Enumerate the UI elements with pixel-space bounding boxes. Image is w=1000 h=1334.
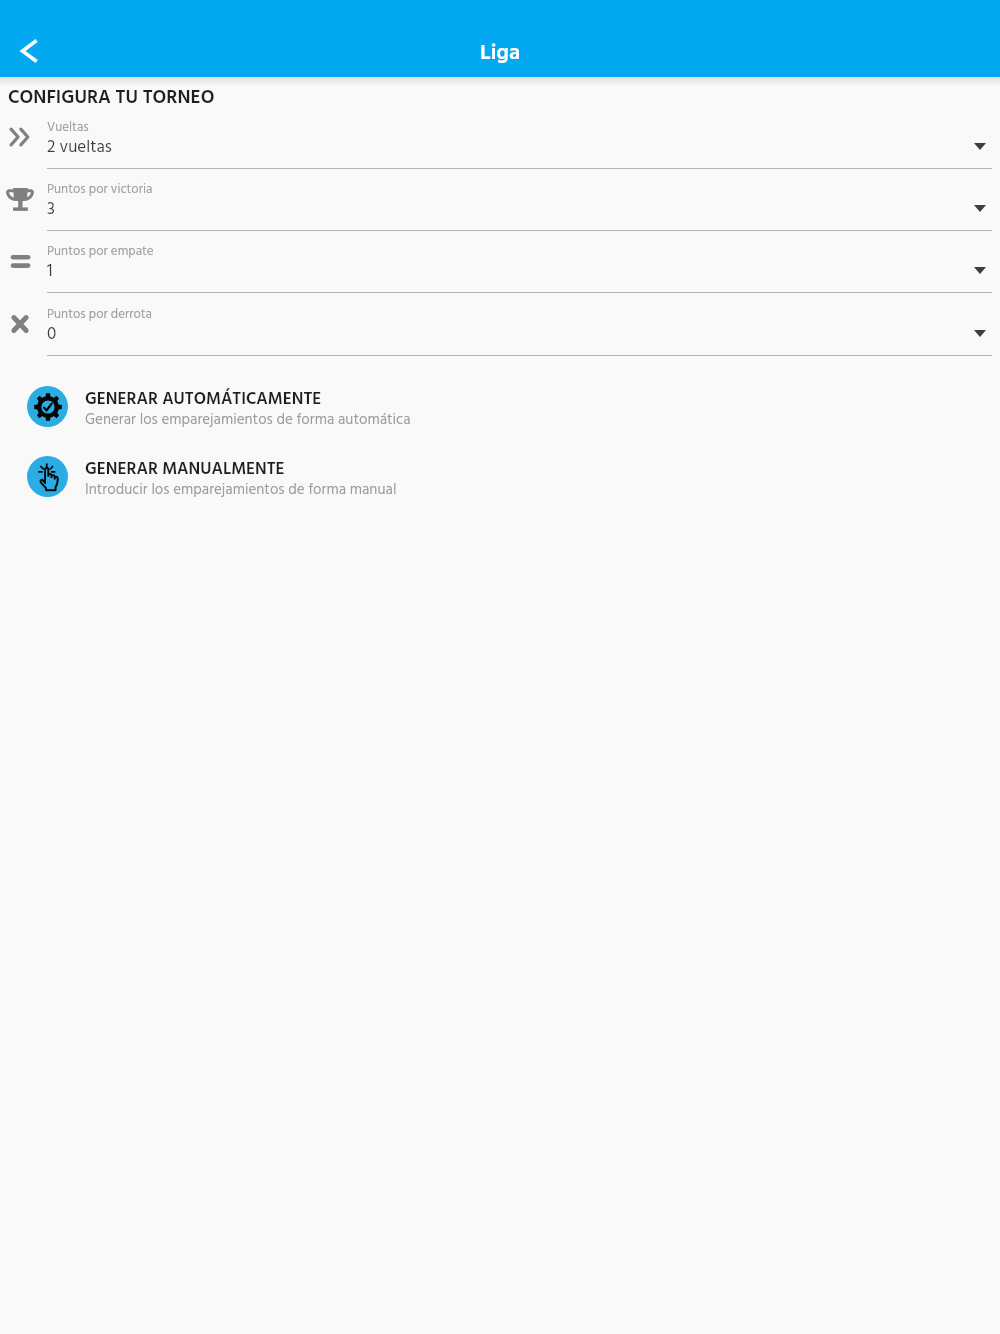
staticText: CONFIGURA TU TORNEO <box>8 83 215 113</box>
staticText: GENERAR AUTOMÁTICAMENTE <box>85 386 322 413</box>
button[interactable]: Vueltas <box>0 107 1000 169</box>
staticText: Introducir los emparejamientos de forma … <box>85 478 397 502</box>
staticText: Liga <box>480 36 521 71</box>
staticText: 0 <box>47 321 57 348</box>
staticText: 2 vueltas <box>47 134 112 161</box>
button[interactable]: GENERAR AUTOMÁTICAMENTE <box>0 386 1000 432</box>
staticText: Vueltas <box>47 117 89 138</box>
staticText: Puntos por victoria <box>47 179 153 200</box>
staticText: 1 <box>47 258 53 285</box>
staticText: 3 <box>47 196 55 223</box>
button[interactable]: Back <box>0 23 56 79</box>
staticText: GENERAR MANUALMENTE <box>85 456 285 483</box>
button[interactable]: GENERAR MANUALMENTE <box>0 456 1000 502</box>
button[interactable]: Puntos por empate <box>0 231 1000 293</box>
staticText: Generar los emparejamientos de forma aut… <box>85 408 411 432</box>
staticText: Puntos por derrota <box>47 304 152 325</box>
button[interactable]: Puntos por victoria <box>0 169 1000 231</box>
button[interactable]: Puntos por derrota <box>0 294 1000 356</box>
staticText: Puntos por empate <box>47 241 154 262</box>
